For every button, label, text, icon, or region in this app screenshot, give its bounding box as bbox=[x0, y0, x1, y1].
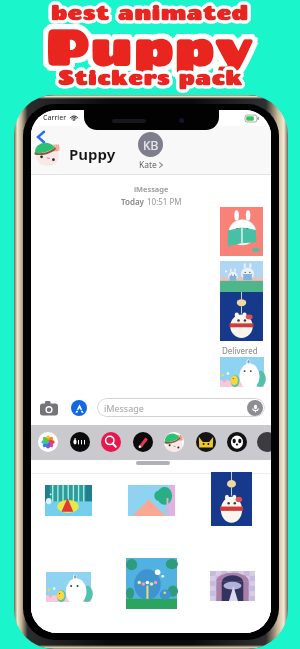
button[interactable]: Stickers bbox=[133, 432, 153, 452]
staticText: Puppy bbox=[46, 16, 254, 75]
staticText: best animated bbox=[50, 0, 248, 21]
staticText: Puppy bbox=[46, 19, 254, 78]
button[interactable]: KB bbox=[138, 132, 163, 171]
staticText: Stickers pack bbox=[60, 63, 245, 87]
staticText: Puppy bbox=[43, 16, 251, 75]
staticText: Puppy bbox=[69, 144, 116, 164]
button[interactable]: Sticker bbox=[126, 558, 177, 609]
staticText: Puppy bbox=[48, 11, 256, 70]
button[interactable]: Sticker bbox=[220, 357, 264, 387]
staticText: Stickers pack bbox=[58, 67, 243, 91]
button[interactable]: Sticker bbox=[211, 472, 252, 526]
staticText: best animated bbox=[53, 0, 251, 22]
staticText: Stickers pack bbox=[58, 65, 243, 89]
staticText: Stickers pack bbox=[59, 68, 244, 92]
staticText: best animated bbox=[53, 0, 251, 24]
staticText: iMessage bbox=[134, 184, 169, 194]
staticText: Kate bbox=[139, 159, 157, 171]
staticText: Stickers pack bbox=[61, 66, 246, 90]
staticText: best animated bbox=[50, 3, 248, 27]
staticText: Stickers pack bbox=[61, 64, 246, 88]
staticText: KB bbox=[143, 137, 159, 153]
staticText: Stickers pack bbox=[58, 63, 243, 87]
staticText: best animated bbox=[54, 0, 252, 23]
staticText: Puppy bbox=[44, 21, 252, 80]
staticText: best animated bbox=[48, 0, 246, 23]
staticText: best animated bbox=[49, 2, 247, 26]
staticText: best animated bbox=[48, 1, 246, 25]
other: Dictate bbox=[247, 400, 263, 416]
staticText: best animated bbox=[53, 2, 251, 26]
staticText: best animated bbox=[52, 3, 250, 27]
staticText: Puppy bbox=[43, 13, 251, 72]
staticText: Stickers pack bbox=[57, 68, 242, 92]
staticText: Stickers pack bbox=[56, 65, 241, 89]
staticText: Today bbox=[121, 196, 147, 207]
button[interactable]: Puppy stickers bbox=[164, 432, 184, 452]
staticText: Puppy bbox=[51, 18, 259, 77]
staticText: Stickers pack bbox=[57, 62, 242, 86]
button[interactable]: Stickers bbox=[196, 432, 216, 452]
staticText: best animated bbox=[49, 0, 247, 24]
staticText: best animated bbox=[49, 0, 247, 22]
button[interactable]: Search bbox=[101, 432, 121, 452]
staticText: best animated bbox=[51, 2, 249, 26]
staticText: Puppy bbox=[49, 19, 257, 78]
staticText: best animated bbox=[51, 0, 249, 22]
staticText: Puppy bbox=[49, 13, 257, 72]
button[interactable]: Sticker bbox=[220, 207, 263, 256]
button[interactable]: Sticker bbox=[210, 571, 255, 601]
staticText: Stickers pack bbox=[55, 64, 240, 88]
button[interactable]: Sticker bbox=[220, 261, 263, 292]
button[interactable]: Sticker bbox=[46, 572, 91, 602]
button[interactable]: App Store bbox=[71, 400, 87, 416]
staticText: Puppy bbox=[43, 19, 251, 78]
staticText: Puppy bbox=[44, 11, 252, 70]
button[interactable]: iMessage bbox=[97, 398, 265, 417]
button[interactable]: Sticker bbox=[45, 485, 92, 516]
button[interactable]: Apple Pay bbox=[70, 432, 90, 452]
button[interactable]: Camera bbox=[38, 398, 60, 418]
staticText: Stickers pack bbox=[56, 67, 241, 91]
staticText: 10:51 PM bbox=[147, 196, 182, 207]
staticText: Puppy bbox=[41, 18, 249, 77]
staticText: Puppy bbox=[48, 21, 256, 80]
staticText: best animated bbox=[54, 1, 252, 25]
button[interactable]: Photos bbox=[38, 432, 58, 452]
staticText: best animated bbox=[52, 0, 250, 21]
staticText: Carrier bbox=[43, 113, 67, 123]
button[interactable]: Sticker bbox=[128, 485, 175, 516]
staticText: best animated bbox=[51, 0, 249, 24]
staticText: Stickers pack bbox=[59, 62, 244, 86]
staticText: Stickers pack bbox=[56, 63, 241, 87]
staticText: Stickers pack bbox=[60, 65, 245, 89]
staticText: iMessage bbox=[104, 402, 144, 414]
staticText: Stickers pack bbox=[60, 67, 245, 91]
button[interactable]: Back bbox=[32, 128, 50, 146]
staticText: Puppy bbox=[51, 14, 259, 73]
button[interactable]: More bbox=[257, 432, 271, 452]
staticText: Puppy bbox=[49, 16, 257, 75]
staticText: Puppy bbox=[41, 14, 249, 73]
staticText: Puppy bbox=[46, 13, 254, 72]
button[interactable]: Expand bbox=[136, 461, 170, 465]
staticText: Stickers pack bbox=[55, 66, 240, 90]
button[interactable]: Sticker bbox=[220, 292, 263, 341]
staticText: Delivered bbox=[222, 345, 258, 356]
button[interactable]: Stickers bbox=[227, 432, 247, 452]
